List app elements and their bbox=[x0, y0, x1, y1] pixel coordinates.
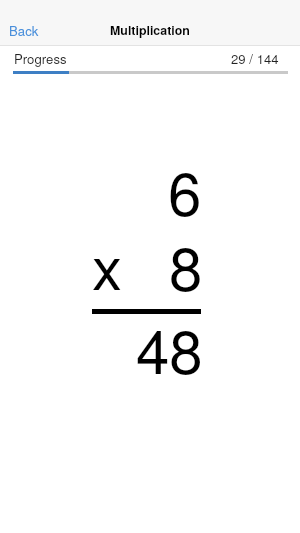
button[interactable]: Back bbox=[4, 19, 44, 42]
staticText: x bbox=[92, 221, 122, 307]
staticText: Multiplication bbox=[110, 21, 190, 39]
staticText: 6 bbox=[168, 147, 202, 233]
staticText: 48 bbox=[136, 305, 203, 391]
staticText: Progress bbox=[14, 49, 67, 68]
staticText: 29 / 144 bbox=[231, 49, 279, 68]
other: Progress 29 of 144 bbox=[13, 71, 288, 74]
staticText: Back bbox=[9, 21, 39, 40]
staticText: 8 bbox=[169, 222, 203, 308]
